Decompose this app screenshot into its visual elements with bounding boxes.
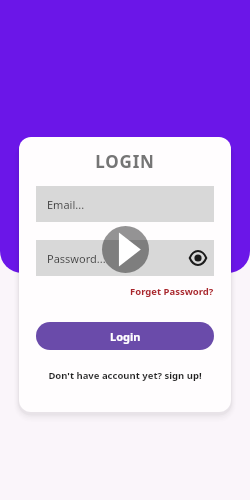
button[interactable]: Play [102,226,149,273]
staticText: LOGIN [19,150,231,174]
staticText: Email... [47,197,85,212]
button[interactable]: Login [36,322,214,350]
staticText: Password... [47,251,106,266]
staticText: Login [110,329,141,344]
staticText: Don't have account yet? sign up! [48,369,202,382]
button[interactable]: Password... [36,240,214,276]
button[interactable]: Email... [36,186,214,222]
button[interactable]: Show password [187,247,209,269]
button[interactable]: Forget Password? [114,283,214,299]
staticText: Forget Password? [130,285,214,298]
button[interactable]: Don't have account yet? sign up! [19,366,231,384]
